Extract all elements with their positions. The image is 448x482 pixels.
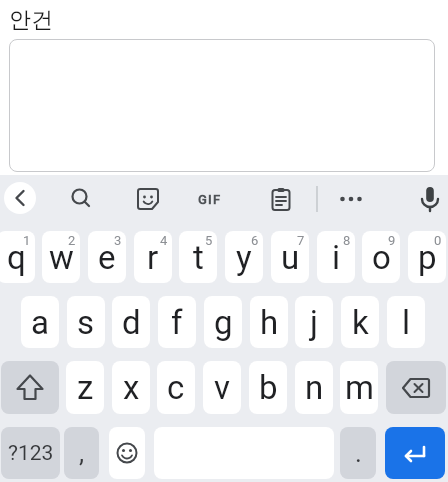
- staticText: 5: [205, 233, 213, 248]
- button[interactable]: z: [66, 361, 104, 414]
- staticText: r: [147, 238, 159, 277]
- button[interactable]: p: [408, 231, 446, 283]
- staticText: e: [98, 238, 116, 277]
- staticText: 1: [23, 233, 31, 248]
- staticText: b: [259, 368, 278, 407]
- button[interactable]: w: [42, 231, 80, 283]
- button[interactable]: [4, 182, 36, 214]
- staticText: 0: [434, 233, 442, 248]
- staticText: 4: [160, 233, 168, 248]
- staticText: w: [49, 238, 74, 277]
- button[interactable]: a: [21, 296, 59, 348]
- staticText: n: [305, 368, 324, 407]
- button[interactable]: s: [67, 296, 105, 348]
- button[interactable]: d: [112, 296, 150, 348]
- button[interactable]: v: [203, 361, 241, 414]
- staticText: l: [402, 303, 411, 342]
- staticText: 2: [68, 233, 76, 248]
- button[interactable]: x: [112, 361, 150, 414]
- staticText: p: [418, 238, 437, 277]
- staticText: s: [77, 303, 95, 342]
- button[interactable]: o: [362, 231, 400, 283]
- staticText: GIF: [198, 192, 222, 207]
- staticText: x: [123, 368, 140, 407]
- staticText: o: [372, 238, 391, 277]
- staticText: 안건: [9, 6, 53, 34]
- button[interactable]: u: [271, 231, 309, 283]
- button[interactable]: k: [341, 296, 379, 348]
- button[interactable]: g: [204, 296, 242, 348]
- staticText: z: [77, 368, 94, 407]
- button[interactable]: h: [250, 296, 288, 348]
- button[interactable]: f: [158, 296, 196, 348]
- staticText: t: [193, 238, 204, 277]
- staticText: 6: [251, 233, 259, 248]
- button[interactable]: e: [88, 231, 126, 283]
- button[interactable]: l: [387, 296, 425, 348]
- button[interactable]: [267, 185, 295, 213]
- staticText: 8: [343, 233, 351, 248]
- button[interactable]: r: [134, 231, 172, 283]
- staticText: a: [31, 303, 49, 342]
- staticText: h: [260, 303, 279, 342]
- button[interactable]: [385, 427, 445, 479]
- staticText: ?123: [8, 441, 54, 466]
- button[interactable]: [386, 361, 446, 414]
- button[interactable]: m: [340, 361, 378, 414]
- button[interactable]: [337, 185, 365, 213]
- button[interactable]: .: [340, 427, 376, 479]
- staticText: v: [214, 368, 230, 407]
- button[interactable]: b: [249, 361, 287, 414]
- staticText: i: [332, 238, 341, 277]
- staticText: j: [310, 303, 318, 342]
- button[interactable]: t: [179, 231, 217, 283]
- button[interactable]: ,: [64, 427, 99, 479]
- staticText: m: [345, 368, 374, 407]
- staticText: k: [352, 303, 369, 342]
- button[interactable]: ?123: [1, 427, 60, 479]
- staticText: f: [171, 303, 183, 342]
- staticText: q: [7, 238, 26, 277]
- staticText: g: [214, 303, 233, 342]
- button[interactable]: y: [225, 231, 263, 283]
- button[interactable]: c: [157, 361, 195, 414]
- staticText: 9: [388, 233, 396, 248]
- staticText: .: [355, 438, 362, 468]
- button[interactable]: [416, 184, 444, 212]
- button[interactable]: [134, 185, 162, 213]
- button[interactable]: n: [295, 361, 333, 414]
- button[interactable]: [1, 361, 59, 414]
- staticText: u: [281, 238, 300, 277]
- staticText: d: [122, 303, 141, 342]
- staticText: c: [167, 368, 185, 407]
- button[interactable]: q: [0, 231, 35, 283]
- staticText: ,: [79, 438, 85, 468]
- staticText: y: [236, 238, 252, 277]
- button[interactable]: [109, 427, 145, 479]
- staticText: 7: [297, 233, 305, 248]
- staticText: 3: [114, 233, 122, 248]
- button[interactable]: [9, 39, 435, 172]
- button[interactable]: [67, 185, 95, 213]
- button[interactable]: i: [317, 231, 355, 283]
- button[interactable]: j: [295, 296, 333, 348]
- button[interactable]: GIF: [192, 185, 228, 213]
